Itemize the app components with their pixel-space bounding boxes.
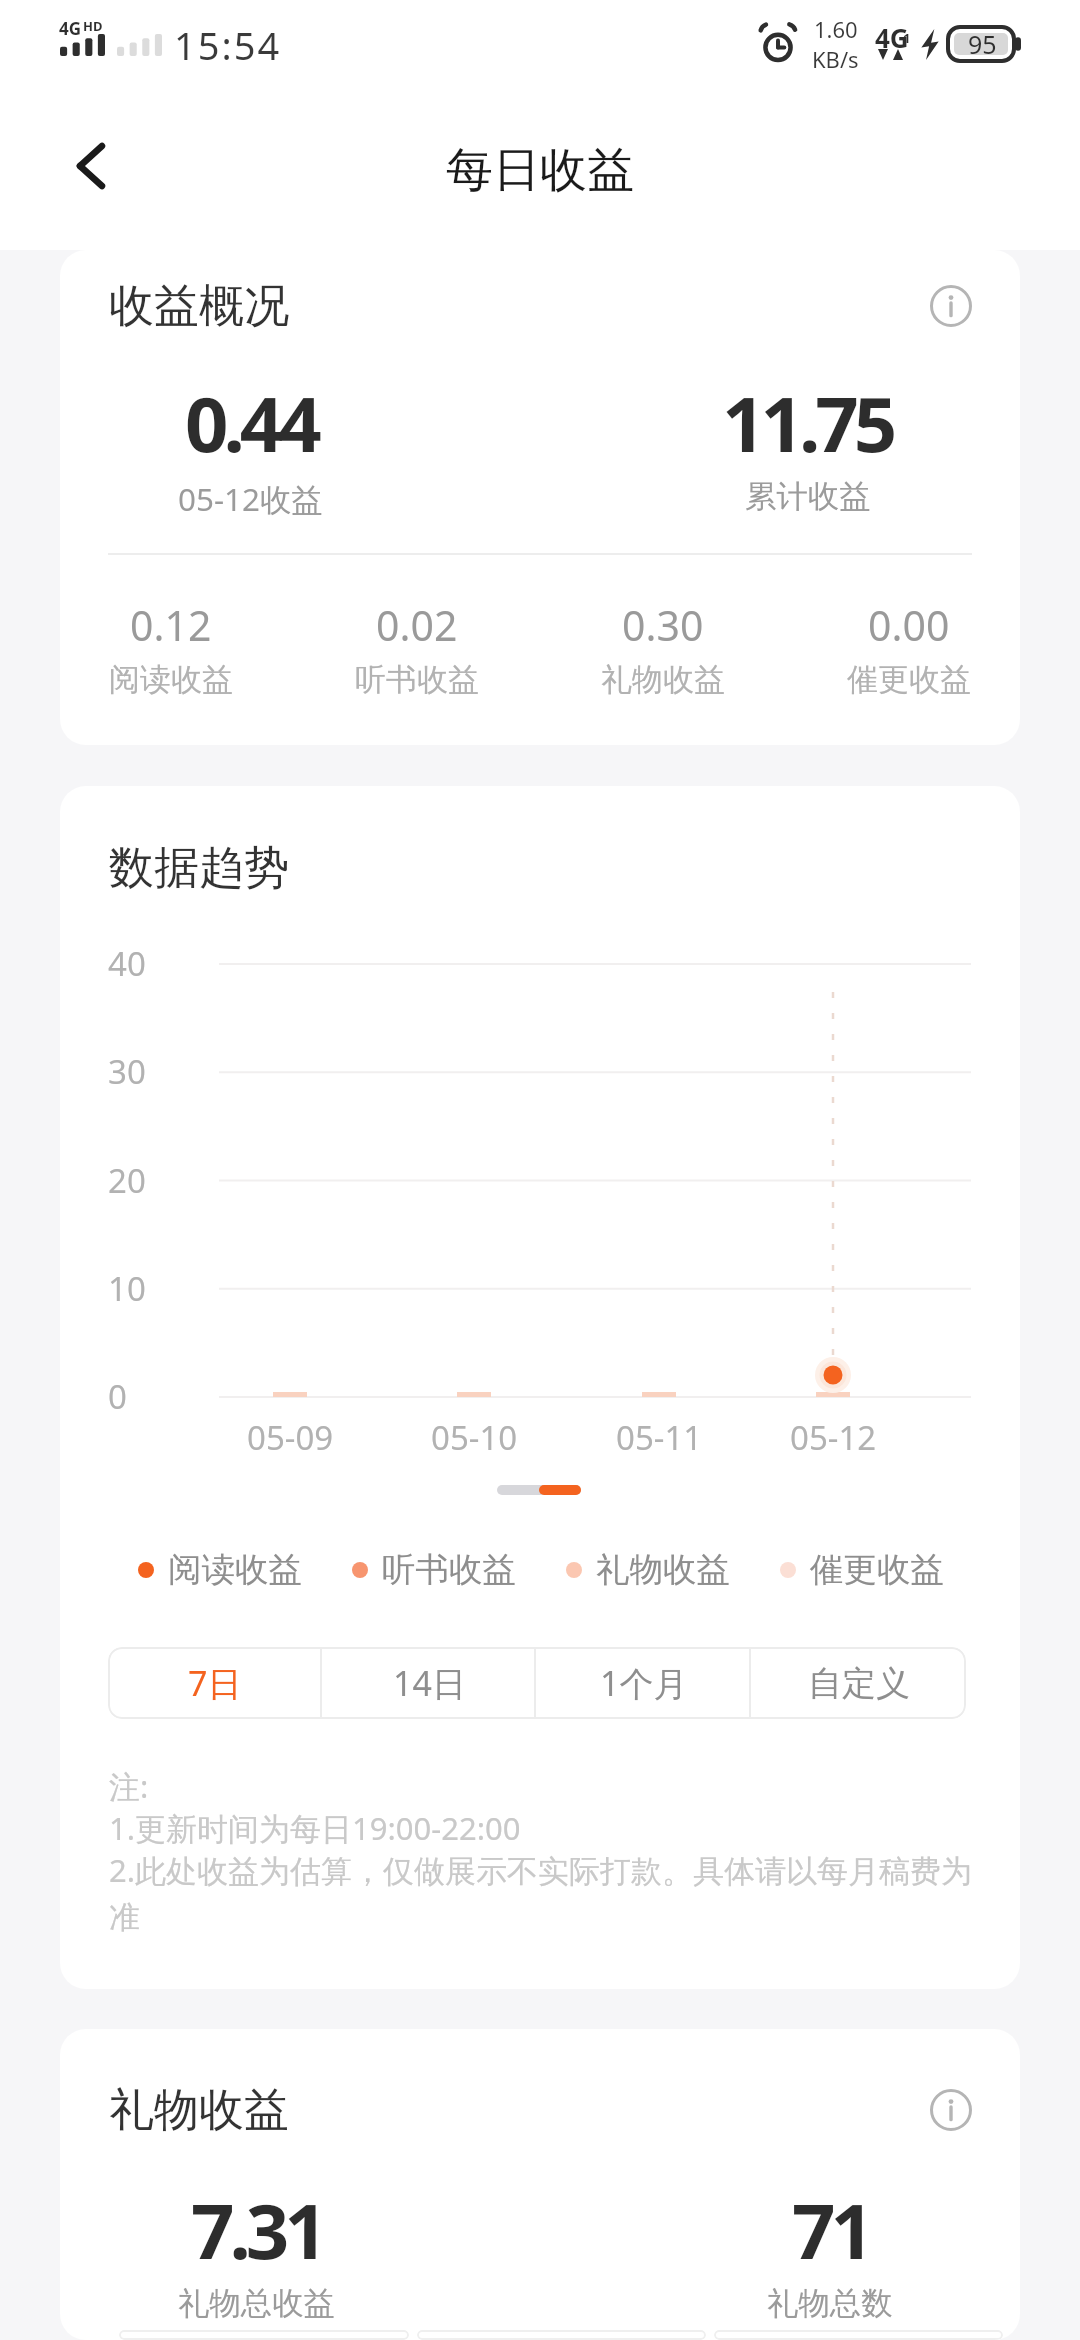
staticText: 7日 (188, 1660, 242, 1706)
staticText: 11.75 (722, 371, 893, 475)
staticText: 30 (108, 1049, 146, 1094)
staticText: 0.02 (376, 597, 458, 653)
button[interactable]: 1个月 (536, 1647, 751, 1719)
staticText: 听书收益 (355, 660, 479, 699)
staticText: 礼物收益 (109, 2082, 289, 2139)
staticText: 1.更新时间为每日19:00-22:00 (109, 1807, 521, 1849)
button[interactable]: Info (911, 2070, 991, 2150)
staticText: 催更收益 (847, 660, 971, 699)
staticText: 礼物收益 (601, 660, 725, 699)
staticText: 0.00 (868, 597, 950, 653)
staticText: 1.60 (814, 14, 858, 44)
staticText: 数据趋势 (109, 840, 289, 897)
staticText: 05-11 (616, 1415, 703, 1460)
button[interactable]: Back (52, 127, 130, 205)
staticText: 10 (108, 1266, 146, 1311)
staticText: 05-12收益 (178, 477, 323, 520)
staticText: 20 (108, 1158, 146, 1203)
button[interactable]: 14日 (322, 1647, 536, 1719)
staticText: KB/s (812, 44, 859, 74)
button[interactable]: 7日 (108, 1647, 322, 1719)
staticText: HD (83, 17, 103, 35)
staticText: 1 (903, 29, 911, 47)
staticText: 累计收益 (745, 477, 871, 517)
staticText: 每日收益 (446, 141, 634, 200)
staticText: 阅读收益 (109, 660, 233, 699)
staticText: 收益概况 (109, 278, 289, 335)
staticText: 05-12 (790, 1415, 877, 1460)
staticText: 14日 (393, 1660, 466, 1706)
staticText: 71 (792, 2178, 869, 2282)
button[interactable]: Info (911, 266, 991, 346)
staticText: 0.12 (130, 597, 212, 653)
staticText: 05-09 (247, 1415, 334, 1460)
staticText: 礼物总收益 (178, 2284, 335, 2324)
staticText: 礼物总数 (767, 2284, 893, 2324)
staticText: 05-10 (431, 1415, 518, 1460)
staticText: 15:54 (174, 19, 282, 71)
button[interactable] (714, 2330, 1003, 2340)
button[interactable] (417, 2330, 706, 2340)
staticText: 听书收益 (382, 1549, 516, 1591)
staticText: 40 (108, 941, 146, 986)
staticText: 阅读收益 (168, 1549, 302, 1591)
button[interactable] (119, 2330, 409, 2340)
staticText: 0.44 (185, 371, 317, 475)
staticText: 注: (109, 1765, 149, 1807)
staticText: 礼物收益 (596, 1549, 730, 1591)
staticText: 0 (108, 1374, 127, 1419)
button[interactable]: 自定义 (751, 1647, 966, 1719)
staticText: 催更收益 (810, 1549, 944, 1591)
staticText: 4G (875, 20, 909, 55)
staticText: 1个月 (600, 1660, 688, 1706)
staticText: 2.此处收益为估算，仅做展示不实际打款。具体请以每月稿费为准 (109, 1849, 992, 1937)
staticText: 自定义 (808, 1662, 910, 1705)
staticText: 0.30 (622, 597, 704, 653)
staticText: 95 (968, 27, 997, 61)
staticText: 4G (59, 17, 82, 40)
staticText: 7.31 (191, 2178, 323, 2282)
